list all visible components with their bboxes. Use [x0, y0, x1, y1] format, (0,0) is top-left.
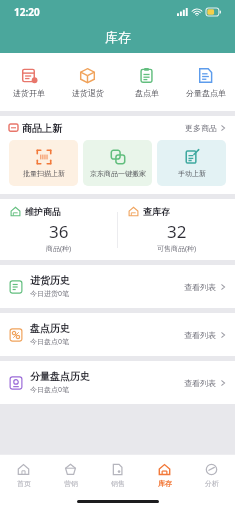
- staticText: 分量盘点历史: [30, 370, 90, 383]
- button[interactable]: 维护商品: [0, 199, 117, 260]
- staticText: 商品(种): [46, 244, 72, 254]
- staticText: 销售: [111, 479, 125, 488]
- staticText: 手动上新: [178, 169, 206, 178]
- staticText: 首页: [17, 479, 31, 488]
- staticText: 查看列表: [184, 282, 216, 292]
- button[interactable]: 进货退货: [58, 53, 117, 111]
- button[interactable]: 进货开单: [0, 53, 58, 111]
- button[interactable]: 进货历史: [0, 265, 235, 308]
- staticText: 36: [49, 220, 69, 243]
- staticText: 分析: [205, 479, 219, 488]
- button[interactable]: 库存: [141, 455, 188, 495]
- staticText: 今日盘点0笔: [30, 337, 70, 347]
- staticText: 今日盘点0笔: [30, 385, 70, 395]
- staticText: 查看列表: [184, 330, 216, 340]
- staticText: 查库存: [143, 206, 170, 217]
- staticText: 京东商品一键搬家: [90, 169, 146, 178]
- button[interactable]: 营销: [47, 455, 94, 495]
- staticText: 盘点历史: [30, 322, 70, 335]
- staticText: 库存: [105, 29, 131, 45]
- button[interactable]: 查库存: [118, 199, 235, 260]
- staticText: 12:20: [14, 5, 40, 19]
- staticText: 查看列表: [184, 378, 216, 388]
- button[interactable]: 京东商品一键搬家: [83, 140, 152, 186]
- staticText: 维护商品: [25, 206, 61, 217]
- button[interactable]: 分量盘点单: [176, 53, 235, 111]
- staticText: 分量盘点单: [186, 88, 226, 98]
- staticText: 批量扫描上新: [23, 169, 65, 178]
- button[interactable]: 分量盘点历史: [0, 361, 235, 404]
- button[interactable]: 分析: [188, 455, 235, 495]
- staticText: 更多商品: [185, 123, 217, 133]
- staticText: 进货开单: [13, 88, 45, 98]
- button[interactable]: 盘点单: [117, 53, 176, 111]
- staticText: 今日进货0笔: [30, 289, 70, 299]
- staticText: 商品上新: [22, 122, 62, 135]
- button[interactable]: 首页: [0, 455, 47, 495]
- button[interactable]: 销售: [94, 455, 141, 495]
- staticText: 营销: [64, 479, 78, 488]
- staticText: 可售商品(种): [157, 244, 197, 254]
- button[interactable]: 手动上新: [157, 140, 226, 186]
- staticText: 库存: [158, 479, 172, 488]
- staticText: 盘点单: [135, 88, 159, 98]
- staticText: 进货退货: [72, 88, 104, 98]
- staticText: 进货历史: [30, 274, 70, 287]
- button[interactable]: 更多商品: [185, 123, 226, 133]
- staticText: 32: [167, 220, 187, 243]
- button[interactable]: 盘点历史: [0, 313, 235, 356]
- button[interactable]: 批量扫描上新: [9, 140, 78, 186]
